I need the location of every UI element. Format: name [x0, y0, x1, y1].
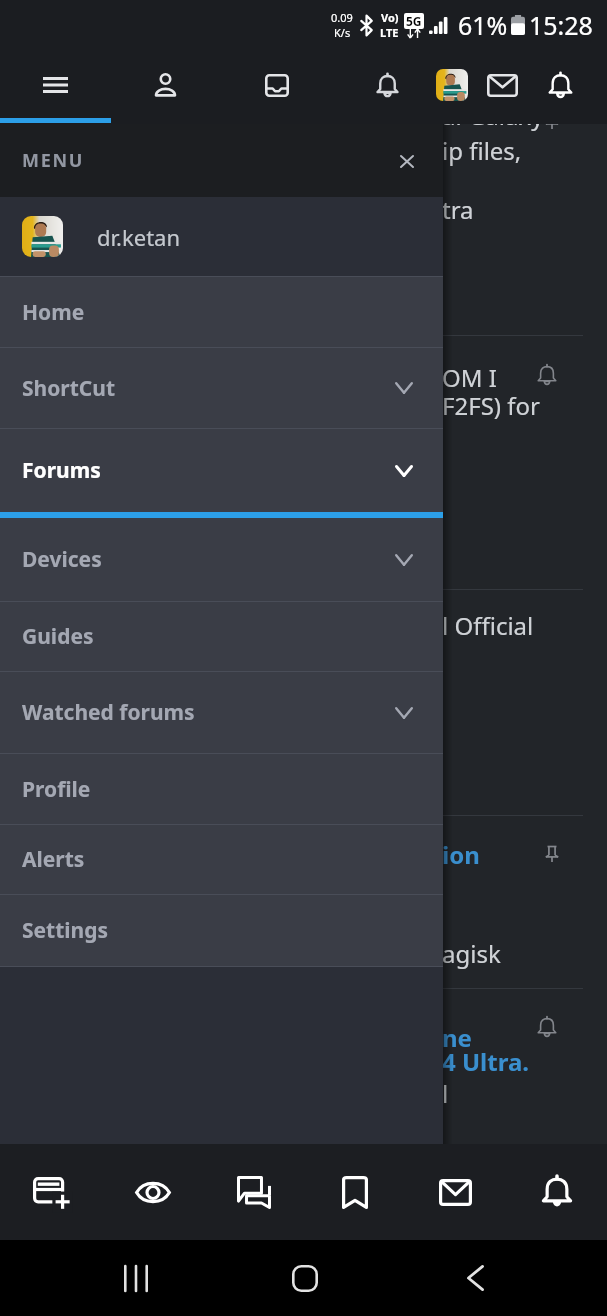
button[interactable]: Devices [0, 518, 443, 601]
button[interactable]: Bookmarks [304, 1144, 405, 1240]
button[interactable]: Recents [102, 1240, 170, 1316]
staticText: 4 Ultra. [442, 1045, 530, 1078]
staticText: Devices [22, 545, 102, 574]
button[interactable]: Back [441, 1240, 509, 1316]
staticText: l Official [442, 609, 534, 642]
button[interactable]: ShortCut [0, 348, 443, 428]
button[interactable]: Profile [425, 46, 479, 124]
staticText: al Galaxy [442, 99, 544, 132]
staticText: Forums [22, 456, 101, 485]
staticText: Guides [22, 622, 94, 651]
button[interactable]: Watched forums [0, 672, 443, 753]
staticText: 5G [406, 13, 422, 29]
button[interactable]: Guides [0, 602, 443, 671]
staticText: ne [442, 1021, 472, 1054]
staticText: MENU [22, 148, 85, 173]
staticText: Settings [22, 916, 109, 945]
staticText: l [442, 1077, 449, 1110]
staticText: K/s [334, 25, 351, 40]
button[interactable]: Inbox [405, 1144, 506, 1240]
button[interactable]: Forums [221, 46, 332, 124]
staticText: dr.ketan [97, 222, 181, 252]
button[interactable]: Profile [0, 754, 443, 824]
button[interactable]: Menu [0, 46, 110, 124]
staticText: ion [442, 838, 480, 871]
staticText: 0.09 [331, 10, 353, 25]
staticText: ip files, [442, 134, 522, 167]
button[interactable]: New thread [0, 1144, 102, 1240]
staticText: agisk [442, 937, 501, 970]
button[interactable]: Notifications [531, 46, 589, 124]
button[interactable]: Home [0, 277, 443, 347]
staticText: Watched forums [22, 698, 195, 727]
staticText: LTE [380, 25, 399, 40]
staticText: F2FS) for [442, 389, 540, 422]
staticText: Home [22, 298, 85, 327]
staticText: 61% [458, 8, 508, 42]
button[interactable]: Close menu [385, 139, 429, 183]
button[interactable]: Home [271, 1240, 339, 1316]
button[interactable]: dr.ketan [0, 197, 443, 276]
staticText: tra [442, 193, 474, 226]
button[interactable]: Conversations [203, 1144, 304, 1240]
staticText: OM I [442, 361, 497, 394]
button[interactable]: Settings [0, 895, 443, 966]
staticText: Profile [22, 775, 91, 804]
staticText: Alerts [22, 845, 85, 874]
button[interactable]: Account [110, 46, 221, 124]
staticText: ShortCut [22, 374, 116, 403]
button[interactable]: Watched [102, 1144, 203, 1240]
button[interactable]: Alerts [332, 46, 443, 124]
button[interactable]: Alerts [0, 825, 443, 894]
button[interactable]: Inbox [473, 46, 531, 124]
button[interactable]: Notifications [506, 1144, 607, 1240]
staticText: 15:28 [529, 8, 593, 42]
staticText: Vo) [381, 10, 399, 25]
button[interactable]: Forums [0, 429, 443, 512]
